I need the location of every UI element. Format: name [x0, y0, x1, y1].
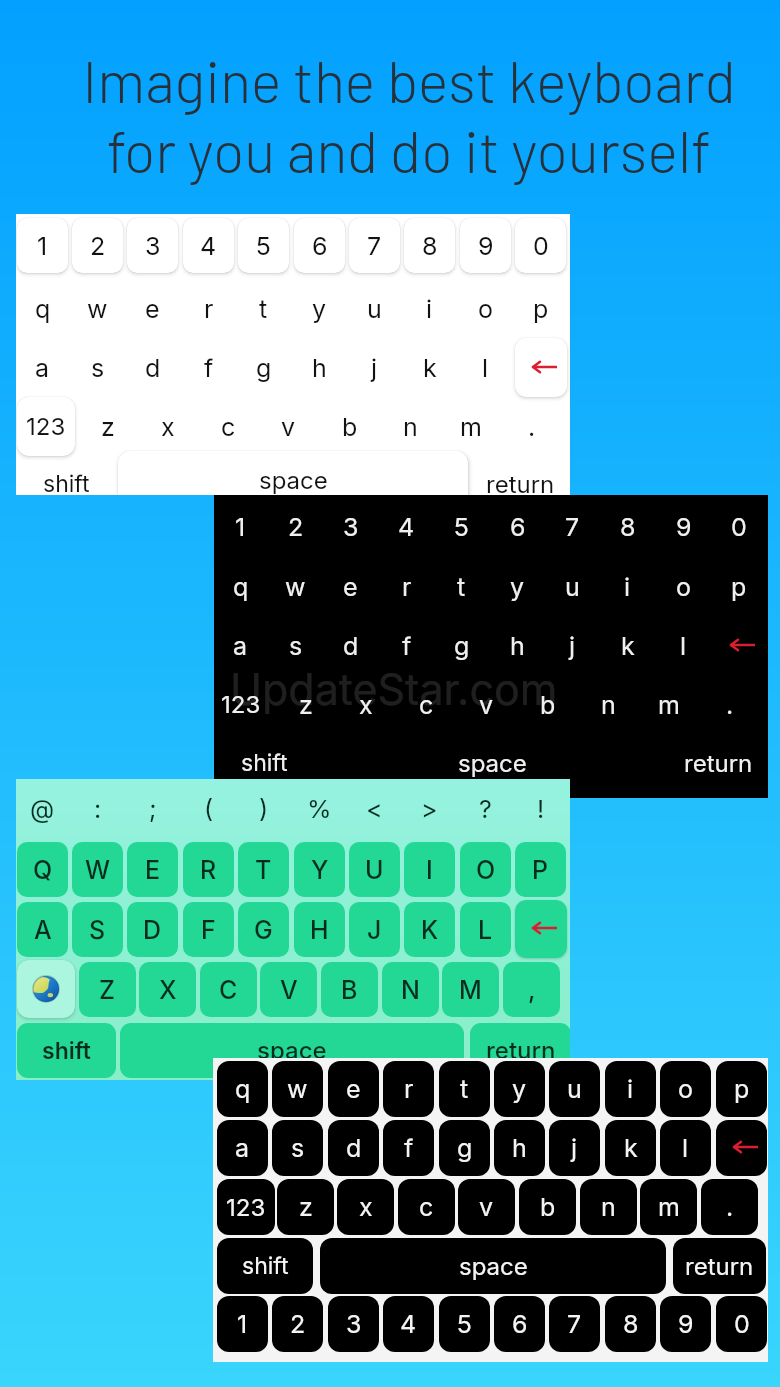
button[interactable]: r	[381, 559, 432, 614]
button[interactable]: t	[238, 281, 289, 336]
button[interactable]: Y	[294, 842, 345, 897]
button[interactable]: 7	[549, 1296, 600, 1352]
button[interactable]: i	[602, 559, 653, 614]
button[interactable]: q	[217, 1061, 268, 1117]
button[interactable]: 0	[713, 499, 764, 554]
button[interactable]: c	[398, 1179, 455, 1235]
button[interactable]: %	[294, 781, 345, 836]
button[interactable]: n	[580, 677, 637, 732]
button[interactable]: k	[605, 1120, 656, 1176]
button[interactable]: d	[325, 618, 376, 673]
button[interactable]: 0	[716, 1296, 767, 1352]
button[interactable]: 6	[494, 1296, 545, 1352]
button[interactable]: w	[270, 559, 321, 614]
button[interactable]: e	[127, 281, 178, 336]
button[interactable]: r	[183, 281, 234, 336]
button[interactable]: space	[317, 738, 668, 788]
button[interactable]: 7	[349, 218, 400, 273]
button[interactable]: t	[436, 559, 487, 614]
button[interactable]: k	[404, 340, 455, 395]
button[interactable]: 9	[460, 218, 511, 273]
button[interactable]: m	[442, 399, 499, 454]
button[interactable]: p	[515, 281, 566, 336]
button[interactable]: 3	[325, 499, 376, 554]
button[interactable]: R	[183, 842, 234, 897]
button[interactable]: 1	[215, 499, 266, 554]
button[interactable]: b	[519, 677, 576, 732]
button[interactable]: y	[494, 1061, 545, 1117]
button[interactable]: f	[183, 340, 234, 395]
button[interactable]: C	[200, 962, 257, 1017]
button[interactable]: h	[492, 618, 543, 673]
button[interactable]: 0	[515, 218, 566, 273]
button[interactable]: Backspace	[716, 1120, 767, 1176]
button[interactable]: 6	[492, 499, 543, 554]
button[interactable]: 9	[660, 1296, 711, 1352]
button[interactable]: U	[349, 842, 400, 897]
button[interactable]: a	[217, 1120, 268, 1176]
button[interactable]: w	[72, 281, 123, 336]
button[interactable]: n	[580, 1179, 637, 1235]
button[interactable]: l	[658, 618, 709, 673]
button[interactable]: P	[515, 842, 566, 897]
button[interactable]: 2	[72, 218, 123, 273]
button[interactable]: t	[439, 1061, 490, 1117]
button[interactable]: return	[673, 1238, 766, 1294]
button[interactable]: a	[215, 618, 266, 673]
button[interactable]: J	[349, 902, 400, 957]
button[interactable]: Change language	[17, 960, 75, 1018]
button[interactable]: M	[442, 962, 499, 1017]
button[interactable]: h	[494, 1120, 545, 1176]
button[interactable]: o	[460, 281, 511, 336]
button[interactable]: G	[238, 902, 289, 957]
button[interactable]: shift	[17, 1023, 116, 1078]
button[interactable]: >	[404, 781, 455, 836]
button[interactable]: z	[277, 1179, 334, 1235]
button[interactable]: i	[404, 281, 455, 336]
button[interactable]: Backspace	[713, 618, 765, 673]
button[interactable]: 123	[214, 677, 271, 732]
button[interactable]: D	[127, 902, 178, 957]
button[interactable]: j	[549, 1120, 600, 1176]
button[interactable]: A	[17, 902, 68, 957]
button[interactable]: g	[436, 618, 487, 673]
button[interactable]: b	[519, 1179, 576, 1235]
button[interactable]: !	[515, 781, 566, 836]
button[interactable]: 5	[436, 499, 487, 554]
button[interactable]: c	[200, 399, 257, 454]
button[interactable]: :	[72, 781, 123, 836]
button[interactable]: q	[17, 281, 68, 336]
button[interactable]: 9	[658, 499, 709, 554]
button[interactable]: b	[321, 399, 378, 454]
button[interactable]: r	[383, 1061, 434, 1117]
button[interactable]: )	[238, 781, 289, 836]
button[interactable]: Backspace	[515, 900, 567, 958]
button[interactable]: 3	[127, 218, 178, 273]
button[interactable]: L	[460, 902, 511, 957]
button[interactable]: O	[460, 842, 511, 897]
button[interactable]: l	[660, 1120, 711, 1176]
button[interactable]: 5	[238, 218, 289, 273]
button[interactable]: 4	[183, 218, 234, 273]
button[interactable]: <	[349, 781, 400, 836]
button[interactable]: l	[460, 340, 511, 395]
button[interactable]: 4	[383, 1296, 434, 1352]
button[interactable]: f	[381, 618, 432, 673]
button[interactable]: return	[470, 1023, 570, 1078]
button[interactable]: space	[320, 1238, 666, 1294]
button[interactable]: v	[458, 677, 515, 732]
button[interactable]: m	[640, 677, 697, 732]
button[interactable]: Backspace	[515, 338, 567, 397]
button[interactable]: x	[139, 399, 196, 454]
button[interactable]: 8	[605, 1296, 656, 1352]
button[interactable]: w	[272, 1061, 323, 1117]
button[interactable]: i	[605, 1061, 656, 1117]
button[interactable]: Q	[17, 842, 68, 897]
button[interactable]: z	[79, 399, 136, 454]
button[interactable]: .	[701, 677, 758, 732]
button[interactable]: o	[658, 559, 709, 614]
button[interactable]: 3	[328, 1296, 379, 1352]
button[interactable]: V	[260, 962, 317, 1017]
button[interactable]: x	[337, 677, 394, 732]
button[interactable]: 1	[217, 1296, 268, 1352]
